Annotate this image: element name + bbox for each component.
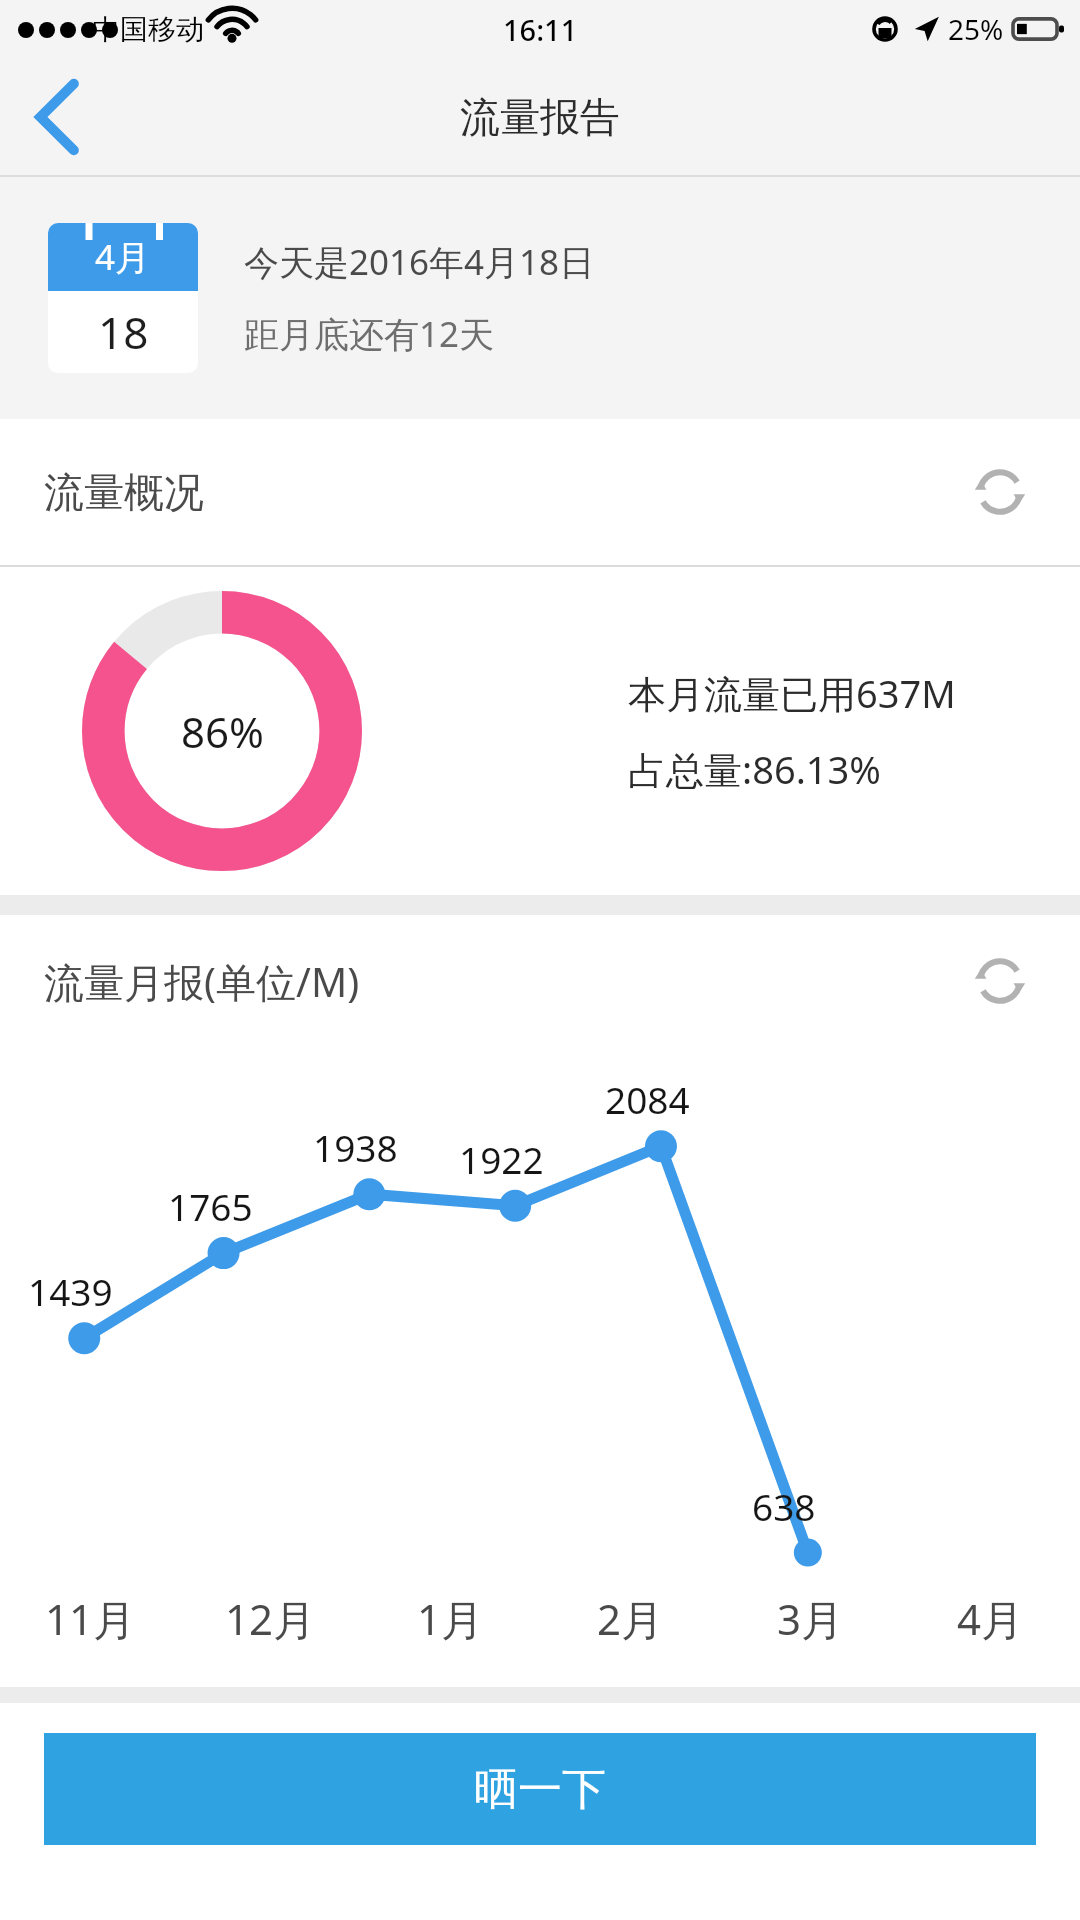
staticText: 25%	[948, 10, 1004, 48]
staticText: 1439	[28, 1266, 113, 1316]
staticText: 距月底还有12天	[244, 310, 495, 358]
staticText: 86%	[181, 703, 264, 760]
button[interactable]: Refresh	[960, 941, 1040, 1021]
button[interactable]: Refresh	[960, 452, 1040, 532]
staticText: 占总量:86.13%	[628, 743, 881, 795]
button[interactable]: Back	[0, 58, 116, 175]
staticText: 中国移动	[92, 12, 204, 47]
staticText: 12月	[225, 1590, 316, 1647]
staticText: 1月	[417, 1590, 484, 1647]
staticText: 晒一下	[474, 1762, 606, 1817]
staticText: 3月	[777, 1590, 844, 1647]
staticText: 1938	[313, 1122, 398, 1172]
staticText: 638	[752, 1481, 816, 1531]
staticText: 2月	[597, 1590, 664, 1647]
staticText: 16:11	[503, 10, 578, 49]
staticText: 1922	[459, 1134, 544, 1184]
staticText: 流量概况	[44, 467, 204, 517]
staticText: 流量报告	[460, 92, 620, 142]
staticText: 4月	[957, 1590, 1024, 1647]
staticText: 4月	[95, 233, 151, 281]
staticText: 18	[98, 302, 149, 362]
staticText: 1765	[168, 1181, 253, 1231]
staticText: 今天是2016年4月18日	[244, 238, 595, 286]
staticText: 11月	[45, 1590, 136, 1647]
staticText: 流量月报(单位/M)	[44, 954, 360, 1009]
staticText: 2084	[605, 1074, 690, 1124]
staticText: 本月流量已用637M	[628, 667, 956, 719]
button[interactable]: 晒一下	[44, 1733, 1036, 1845]
